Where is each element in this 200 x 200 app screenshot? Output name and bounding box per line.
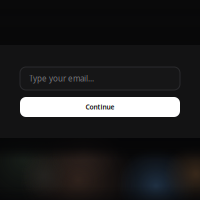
button[interactable]: Continue [0, 90, 200, 117]
button[interactable]: Type your email... [0, 45, 200, 90]
staticText: Type your email... [29, 73, 94, 84]
staticText: Continue [85, 103, 114, 111]
